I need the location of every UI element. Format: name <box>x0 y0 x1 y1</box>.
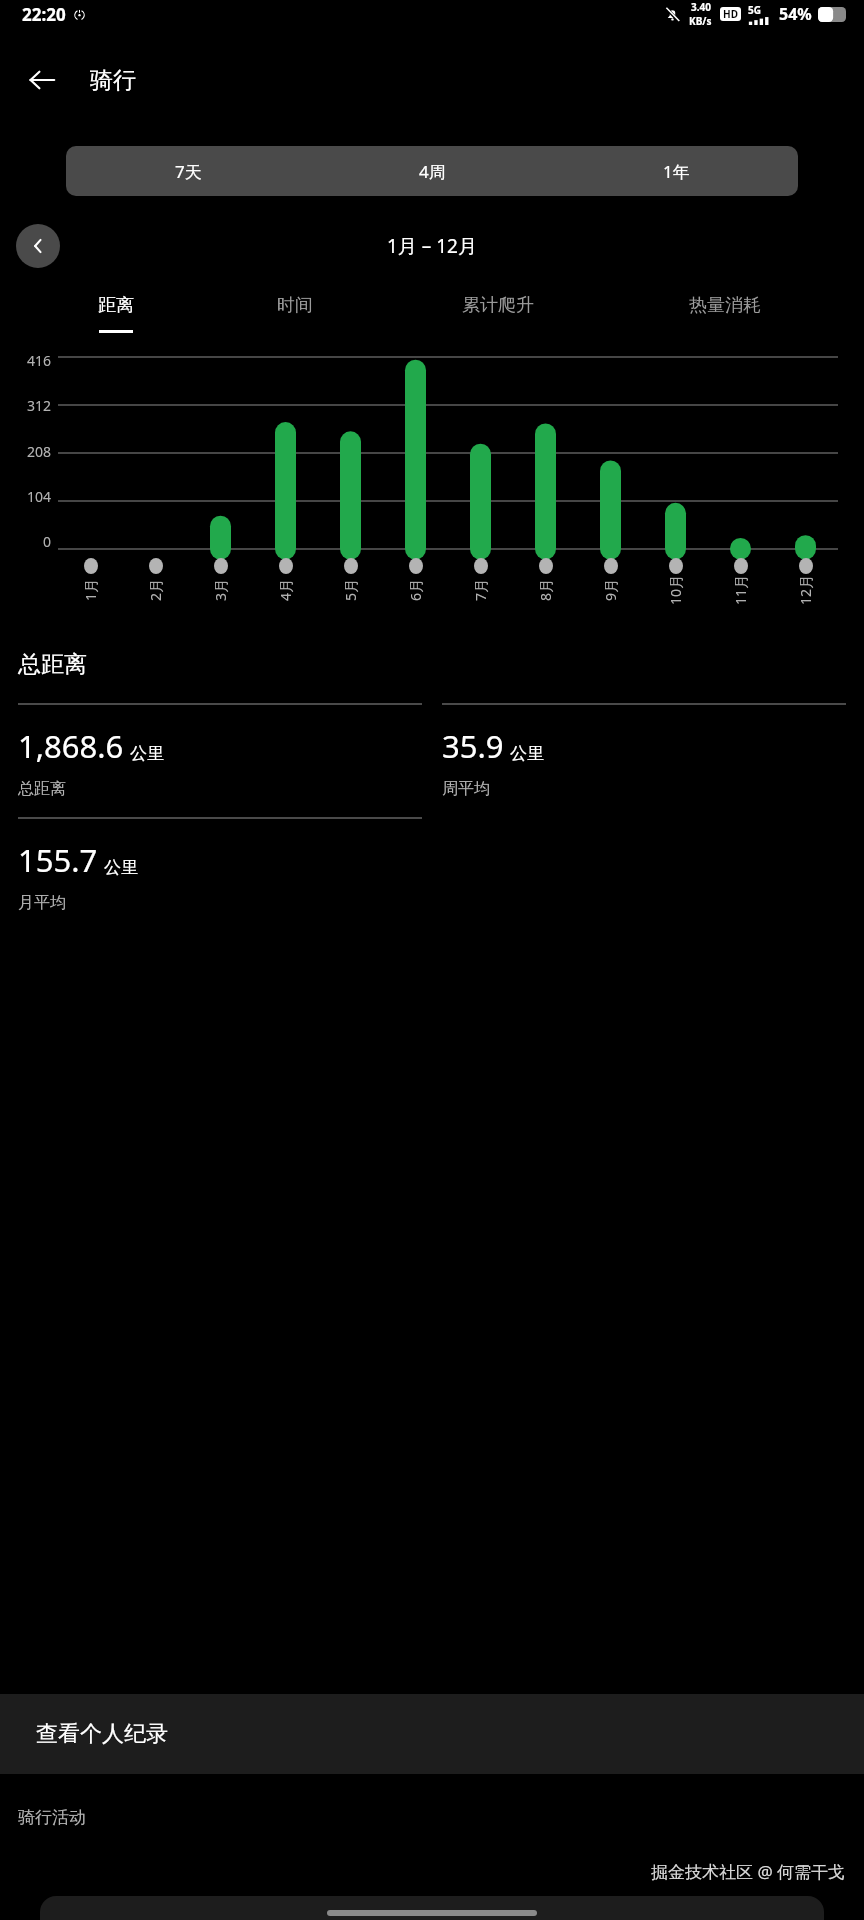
staticText: 累计爬升 <box>462 294 534 317</box>
staticText: 8月 <box>536 578 555 601</box>
staticText: 1年 <box>663 160 690 183</box>
staticText: KB/s <box>689 14 712 28</box>
staticText: 312 <box>27 396 52 415</box>
staticText: 距离 <box>98 294 134 317</box>
button[interactable]: Previous period <box>16 224 60 268</box>
staticText: 416 <box>27 351 52 370</box>
staticText: 骑行活动 <box>18 1807 86 1828</box>
staticText: 6月 <box>406 578 425 601</box>
staticText: 4周 <box>419 160 446 183</box>
button[interactable]: 4周 <box>310 146 554 196</box>
staticText: 11月 <box>731 574 750 605</box>
staticText: 208 <box>27 442 52 461</box>
staticText: 公里 <box>130 743 164 764</box>
staticText: HD <box>723 7 738 21</box>
button[interactable]: 热量消耗 <box>611 294 838 333</box>
staticText: 1月 <box>81 578 100 601</box>
button[interactable]: 1年 <box>554 146 798 196</box>
button[interactable]: 累计爬升 <box>384 294 611 333</box>
button[interactable]: 35.9 <box>442 703 846 799</box>
staticText: 3月 <box>211 578 230 601</box>
button[interactable]: 查看个人纪录 <box>0 1694 864 1774</box>
staticText: 0 <box>43 532 52 551</box>
staticText: 总距离 <box>18 650 87 679</box>
staticText: 35.9 <box>442 725 504 767</box>
staticText: 5月 <box>341 578 360 601</box>
staticText: 12月 <box>796 574 815 605</box>
button[interactable]: Back <box>14 52 70 108</box>
staticText: 1月 – 12月 <box>387 233 477 259</box>
staticText: 月平均 <box>18 893 66 913</box>
button[interactable]: 7天 <box>66 146 310 196</box>
staticText: 热量消耗 <box>689 294 761 317</box>
staticText: 2月 <box>146 578 165 601</box>
staticText: 155.7 <box>18 839 98 881</box>
staticText: 3.40 <box>691 0 711 14</box>
button[interactable]: 155.7 <box>18 817 422 913</box>
staticText: 公里 <box>104 857 138 878</box>
staticText: 公里 <box>510 743 544 764</box>
staticText: 54% <box>779 3 812 25</box>
staticText: 周平均 <box>442 779 490 799</box>
staticText: 5G <box>748 3 761 17</box>
staticText: 9月 <box>601 578 620 601</box>
button[interactable]: 1,868.6 <box>18 703 422 799</box>
staticText: 掘金技术社区 @ 何需干戈 <box>651 1860 846 1883</box>
staticText: 104 <box>27 487 52 506</box>
staticText: 10月 <box>666 574 685 605</box>
button[interactable]: 时间 <box>205 294 384 333</box>
staticText: 总距离 <box>18 779 66 799</box>
staticText: 查看个人纪录 <box>36 1720 168 1748</box>
staticText: 1,868.6 <box>18 725 124 767</box>
staticText: 7月 <box>471 578 490 601</box>
staticText: 22:20 <box>22 3 66 26</box>
staticText: 时间 <box>277 294 313 317</box>
staticText: 骑行 <box>90 66 136 95</box>
staticText: 4月 <box>276 578 295 601</box>
button[interactable]: 距离 <box>26 294 205 333</box>
staticText: 7天 <box>175 160 202 183</box>
